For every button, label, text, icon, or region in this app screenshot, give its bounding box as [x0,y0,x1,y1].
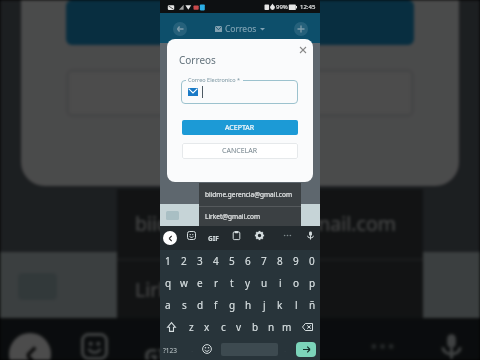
button[interactable]: Correos [215,23,265,35]
button[interactable]: v [231,316,247,338]
button[interactable]: Emoji [201,343,213,355]
staticText: g [229,298,236,312]
button[interactable]: ñ [304,294,320,316]
staticText: w [180,276,188,290]
button[interactable]: k [272,294,288,316]
button[interactable]: m [279,316,295,338]
button[interactable]: 6 [240,250,256,272]
staticText: Lirket@gmail.com [205,212,261,221]
button[interactable]: Add account [294,22,308,36]
button[interactable]: w [176,272,192,294]
staticText: z [189,320,194,334]
button[interactable]: y [240,272,256,294]
button[interactable]: 3 [192,250,208,272]
staticText: o [293,276,300,290]
button[interactable]: Shift [160,316,183,338]
button[interactable]: CANCELAR [66,69,414,117]
button[interactable]: GIF [208,234,219,243]
staticText: Correo Electronico * [188,76,241,83]
button[interactable]: Enter [296,342,316,357]
button[interactable]: q [160,272,176,294]
button[interactable]: d [192,294,208,316]
button[interactable]: 2 [176,250,192,272]
staticText: 1 [165,254,171,268]
button[interactable]: h [240,294,256,316]
staticText: d [197,298,204,312]
staticText: n [268,320,275,334]
staticText: CANCELAR [222,146,258,156]
button[interactable]: ACEPTAR [182,120,298,135]
button[interactable]: ACEPTAR [66,0,414,45]
button[interactable]: b [247,316,263,338]
button[interactable]: g [224,294,240,316]
button[interactable]: Lirket@gmail.com [117,261,423,318]
button[interactable]: Back [173,22,187,36]
button[interactable]: z [183,316,199,338]
staticText: ñ [309,298,316,312]
staticText: biidme.gerencia@gmail.com [205,190,292,199]
button[interactable]: n [263,316,279,338]
staticText: 99% [276,3,288,11]
button[interactable]: x [199,316,215,338]
button[interactable]: u [256,272,272,294]
button[interactable]: p [304,272,320,294]
staticText: Correos [225,23,257,35]
button[interactable]: r [208,272,224,294]
button[interactable]: More [363,327,402,360]
button[interactable]: e [192,272,208,294]
button[interactable]: 0 [304,250,320,272]
staticText: 5 [229,254,235,268]
staticText: v [236,320,242,334]
staticText: Lirket@gmail.com [135,276,303,303]
staticText: 9 [293,254,299,268]
button[interactable]: Voice input [432,327,471,360]
button[interactable]: Backspace [295,316,320,338]
button[interactable]: More [281,229,294,242]
button[interactable]: Clipboard [230,229,243,242]
staticText: r [214,276,219,290]
button[interactable]: Voice input [304,229,317,242]
button[interactable]: c [215,316,231,338]
button[interactable]: 1 [160,250,176,272]
button[interactable]: l [288,294,304,316]
staticText: u [261,276,268,290]
staticText: b [252,320,259,334]
button[interactable]: Settings [279,327,318,360]
button[interactable]: Close keyboard toolbar [9,333,51,360]
staticText: 7 [261,254,267,268]
button[interactable]: Close [294,41,312,59]
button[interactable]: CANCELAR [182,143,298,159]
button[interactable]: a [160,294,176,316]
button[interactable]: 8 [272,250,288,272]
button[interactable]: Lirket@gmail.com [199,207,301,226]
button[interactable]: j [256,294,272,316]
staticText: biidme.gerencia@gmail.com [135,210,396,237]
button[interactable]: 5 [224,250,240,272]
button[interactable]: f [208,294,224,316]
button[interactable]: i [272,272,288,294]
button[interactable]: Close keyboard toolbar [163,231,177,245]
button[interactable]: 7 [256,250,272,272]
button[interactable]: 4 [208,250,224,272]
button[interactable]: s [176,294,192,316]
button[interactable]: o [288,272,304,294]
button[interactable]: Stickers [185,229,198,242]
staticText: ACEPTAR [225,123,255,133]
button[interactable]: Symbols [163,346,177,355]
staticText: CANCELAR [186,78,294,108]
button[interactable]: t [224,272,240,294]
button[interactable]: GIF [144,342,177,360]
button[interactable]: Settings [253,229,266,242]
button[interactable]: biidme.gerencia@gmail.com [199,183,301,206]
staticText: 2 [181,254,187,268]
button[interactable]: 9 [288,250,304,272]
button[interactable]: Clipboard [210,327,249,360]
button[interactable]: biidme.gerencia@gmail.com [117,189,423,258]
staticText: s [182,298,187,312]
button[interactable]: Stickers [75,327,114,360]
